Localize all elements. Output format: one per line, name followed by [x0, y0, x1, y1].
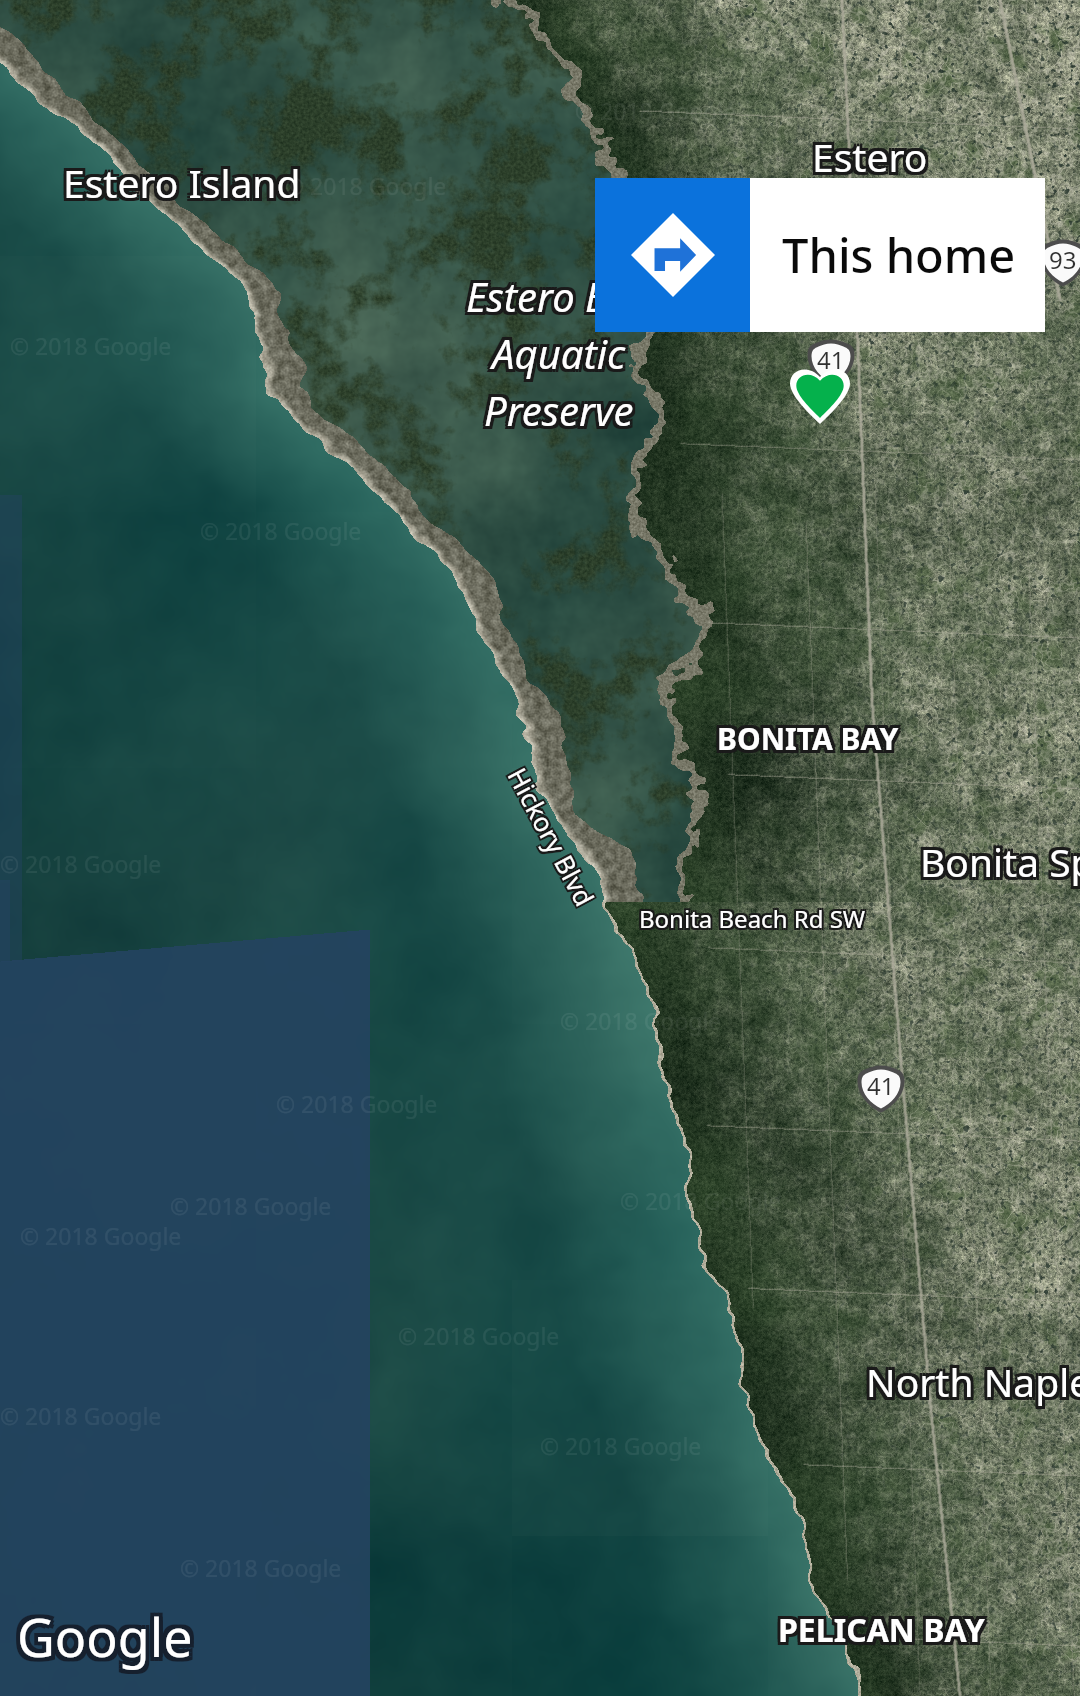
staticText: PELICAN BAY [778, 1608, 985, 1652]
staticText: Preserve [484, 383, 634, 437]
staticText: BONITA BAY [714, 715, 896, 756]
staticText: Estero Bay [463, 266, 648, 320]
staticText: © 2018 Google [170, 1190, 332, 1221]
staticText: North Naples [866, 1358, 1080, 1411]
staticText: Google [21, 1597, 197, 1668]
staticText: © 2018 Google [560, 1005, 722, 1036]
staticText: Estero [809, 130, 925, 183]
button[interactable]: Directions [595, 178, 1045, 332]
staticText: PELICAN BAY [781, 1605, 988, 1649]
staticText: BONITA BAY [720, 715, 902, 756]
staticText: © 2018 Google [620, 1185, 782, 1216]
staticText: Estero Island [60, 153, 298, 206]
staticText: Google [13, 1605, 189, 1676]
staticText: Google [21, 1601, 197, 1672]
staticText: Bonita Springs [917, 832, 1080, 885]
staticText: Bonita Beach Rd SW [641, 900, 868, 933]
staticText: Estero Island [63, 156, 301, 209]
staticText: Preserve [484, 380, 634, 434]
staticText: Aquatic [495, 329, 629, 383]
staticText: North Naples [866, 1352, 1080, 1405]
staticText: BONITA BAY [714, 721, 896, 762]
staticText: Estero Bay [463, 272, 648, 326]
staticText: Estero Island [66, 153, 304, 206]
staticText: North Naples [863, 1352, 1080, 1405]
staticText: © 2018 Google [10, 330, 172, 361]
staticText: Hickory Blvd [501, 763, 604, 914]
staticText: PELICAN BAY [778, 1605, 985, 1649]
staticText: Estero Bay [469, 266, 654, 320]
staticText: Aquatic [492, 326, 626, 380]
staticText: Bonita Springs [920, 832, 1080, 885]
staticText: Estero [815, 130, 931, 183]
staticText: © 2018 Google [540, 1430, 702, 1461]
staticText: BONITA BAY [717, 715, 899, 756]
staticText: Estero Bay [466, 269, 651, 323]
staticText: Hickory Blvd [498, 760, 600, 911]
staticText: Aquatic [492, 329, 626, 383]
staticText: Hickory Blvd [501, 759, 604, 909]
staticText: Bonita Springs [923, 835, 1080, 888]
staticText: Estero Island [63, 159, 301, 212]
staticText: Estero Island [63, 153, 301, 206]
staticText: Estero Bay [469, 269, 654, 323]
staticText: © 2018 Google [276, 1088, 438, 1119]
staticText: Hickory Blvd [500, 759, 602, 910]
staticText: Google [17, 1601, 193, 1672]
staticText: Aquatic [495, 323, 629, 377]
staticText: Aquatic [495, 326, 629, 380]
staticText: BONITA BAY [720, 718, 902, 759]
staticText: Estero [812, 127, 928, 180]
staticText: Estero Bay [469, 272, 654, 326]
staticText: Aquatic [489, 323, 623, 377]
staticText: North Naples [863, 1358, 1080, 1411]
staticText: Bonita Springs [920, 838, 1080, 891]
staticText: Estero Island [60, 156, 298, 209]
staticText: Bonita Beach Rd SW [641, 902, 868, 935]
staticText: PELICAN BAY [775, 1608, 982, 1652]
staticText: Google [13, 1601, 189, 1672]
staticText: Aquatic [489, 326, 623, 380]
staticText: Hickory Blvd [503, 762, 606, 913]
staticText: Estero [809, 127, 925, 180]
staticText: Estero Island [66, 156, 304, 209]
staticText: Estero [815, 133, 931, 186]
staticText: This home [782, 223, 1016, 287]
staticText: Preserve [487, 386, 637, 440]
staticText: Google [17, 1605, 193, 1676]
staticText: Preserve [487, 383, 637, 437]
staticText: Preserve [481, 380, 631, 434]
staticText: Estero Bay [466, 266, 651, 320]
staticText: North Naples [869, 1358, 1080, 1411]
staticText: Hickory Blvd [500, 764, 602, 915]
staticText: Estero [815, 127, 931, 180]
staticText: Estero Bay [463, 269, 648, 323]
staticText: North Naples [869, 1352, 1080, 1405]
staticText: © 2018 Google [200, 515, 362, 546]
staticText: Bonita Springs [920, 835, 1080, 888]
staticText: Bonita Springs [917, 835, 1080, 888]
staticText: Bonita Beach Rd SW [639, 904, 866, 937]
staticText: PELICAN BAY [775, 1605, 982, 1649]
staticText: Estero Island [66, 159, 304, 212]
staticText: Preserve [481, 383, 631, 437]
staticText: Bonita Beach Rd SW [637, 902, 864, 935]
staticText: Bonita Springs [923, 832, 1080, 885]
staticText: Hickory Blvd [502, 760, 605, 911]
staticText: Bonita Beach Rd SW [641, 904, 868, 937]
staticText: PELICAN BAY [781, 1611, 988, 1655]
staticText: North Naples [866, 1355, 1080, 1408]
other: Directions [595, 178, 750, 332]
staticText: Hickory Blvd [499, 762, 601, 913]
staticText: Estero [809, 133, 925, 186]
staticText: Estero [812, 133, 928, 186]
staticText: 41 [867, 1069, 895, 1102]
staticText: Aquatic [492, 323, 626, 377]
staticText: Preserve [481, 386, 631, 440]
staticText: 41 [817, 343, 845, 376]
staticText: Hickory Blvd [500, 761, 603, 912]
staticText: BONITA BAY [720, 721, 902, 762]
staticText: Bonita Beach Rd SW [639, 902, 866, 935]
staticText: Bonita Beach Rd SW [637, 900, 864, 933]
staticText: Estero Bay [466, 272, 651, 326]
